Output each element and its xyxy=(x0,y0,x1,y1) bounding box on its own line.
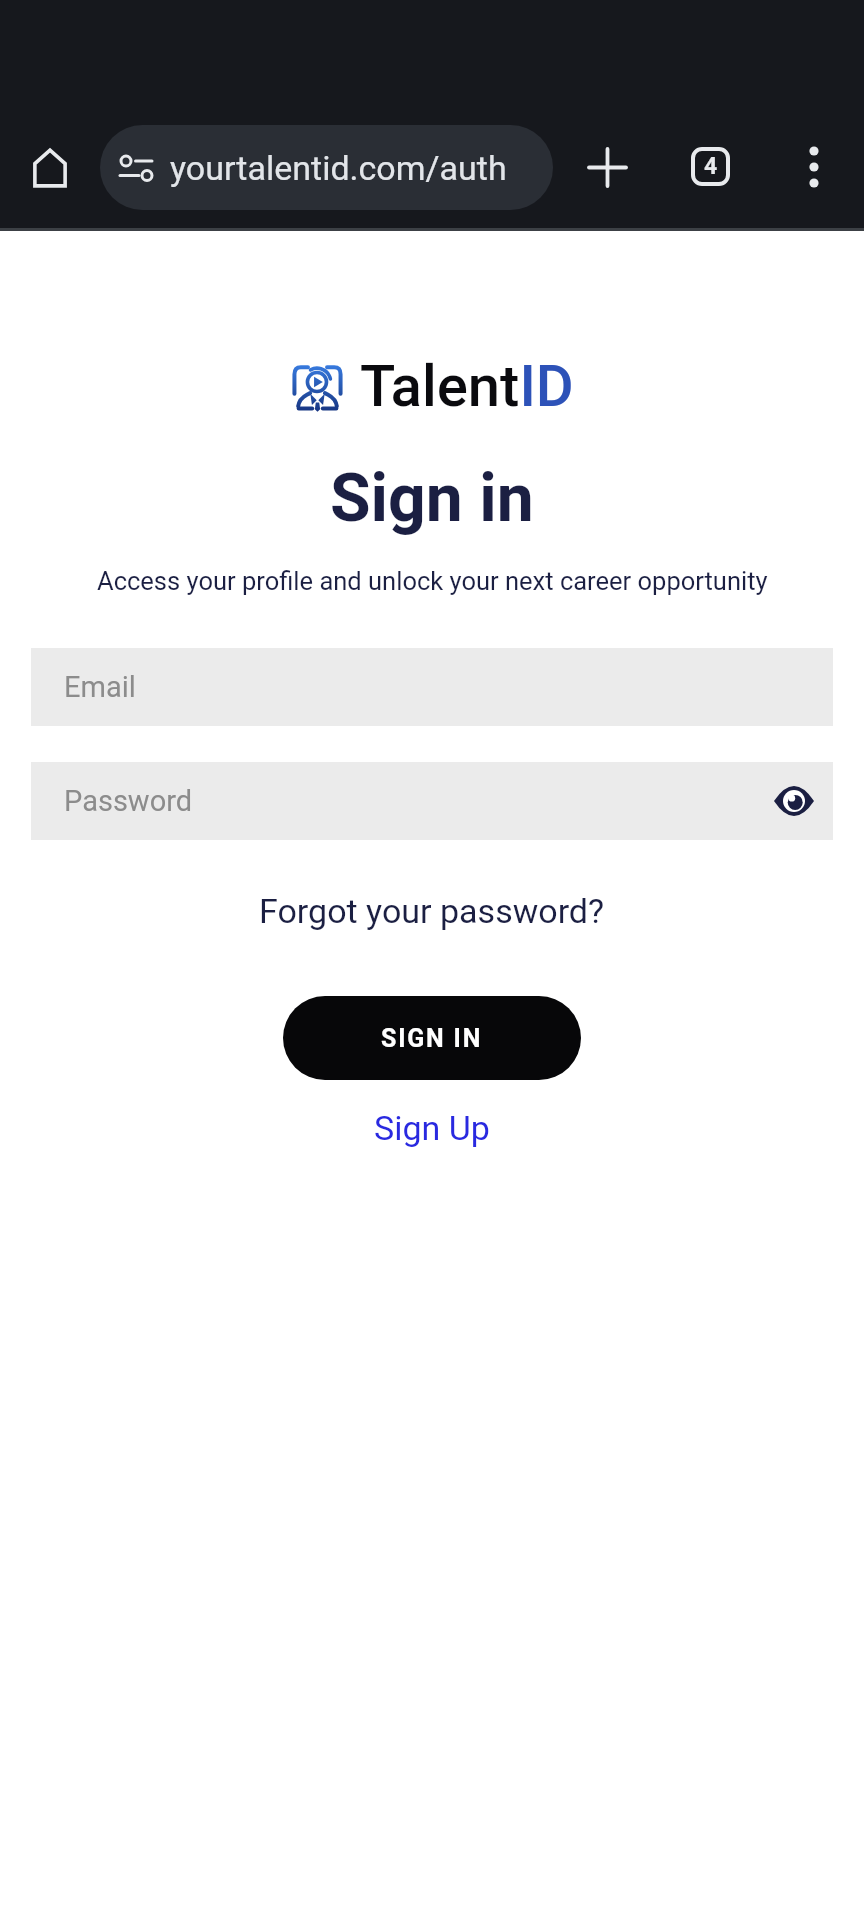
staticText: Forgot your password? xyxy=(259,891,605,931)
button[interactable] xyxy=(24,141,76,193)
staticText: 4 xyxy=(704,153,718,180)
staticText: TalentID xyxy=(360,352,574,420)
staticText: Password xyxy=(64,784,193,818)
staticText: SIGN IN xyxy=(381,1024,483,1053)
button[interactable]: yourtalentid.com/auth xyxy=(100,125,553,210)
staticText: Sign in xyxy=(330,460,534,537)
staticText: Sign Up xyxy=(374,1108,490,1148)
staticText: yourtalentid.com/auth xyxy=(170,148,507,188)
staticText: Email xyxy=(64,670,136,704)
button[interactable]: 4 xyxy=(691,147,730,186)
button[interactable] xyxy=(772,783,816,819)
button[interactable] xyxy=(798,142,830,192)
button[interactable]: Sign Up xyxy=(367,1101,497,1155)
staticText: Access your profile and unlock your next… xyxy=(97,566,768,596)
button[interactable]: Email xyxy=(31,648,833,726)
button[interactable]: SIGN IN xyxy=(283,996,581,1080)
button[interactable]: Password xyxy=(31,762,833,840)
button[interactable] xyxy=(582,142,632,192)
button[interactable]: Forgot your password? xyxy=(252,884,612,938)
